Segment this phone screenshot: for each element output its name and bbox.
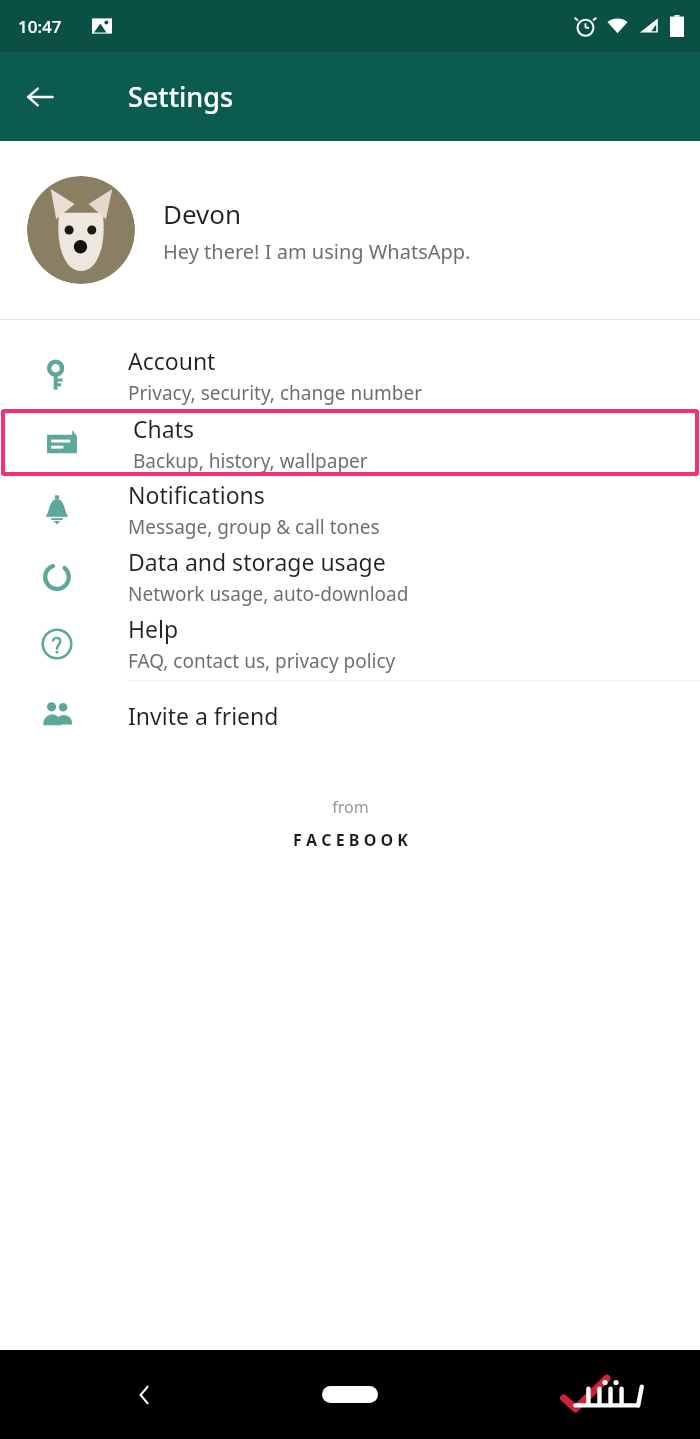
button[interactable]: Data and storage usage [0,543,700,610]
button[interactable]: Back [120,1370,170,1420]
staticText: Backup, history, wallpaper [133,448,368,472]
staticText: Hey there! I am using WhatsApp. [163,238,471,265]
staticText: Invite a friend [128,700,279,731]
staticText: Chats [133,413,194,444]
staticText: FAQ, contact us, privacy policy [128,648,396,674]
button[interactable]: Help [0,610,700,677]
staticText: Network usage, auto-download [128,581,409,607]
staticText: Notifications [128,479,265,510]
staticText: Message, group & call tones [128,514,380,540]
button[interactable]: Home [322,1386,378,1403]
staticText: F A C E B O O K [293,829,408,851]
staticText: 10:47 [18,15,62,38]
button[interactable]: Invite a friend [0,684,700,746]
staticText: Data and storage usage [128,546,386,577]
staticText: from [332,796,369,818]
button[interactable]: Account [0,342,700,409]
button[interactable]: Notifications [0,476,700,543]
button[interactable]: Back [12,69,68,125]
button[interactable]: Devon [0,141,700,319]
staticText: Account [128,345,216,376]
button[interactable]: Chats [5,413,695,472]
staticText: Devon [163,196,242,231]
staticText: Settings [128,78,234,115]
staticText: Privacy, security, change number [128,380,422,406]
staticText: Help [128,613,179,644]
